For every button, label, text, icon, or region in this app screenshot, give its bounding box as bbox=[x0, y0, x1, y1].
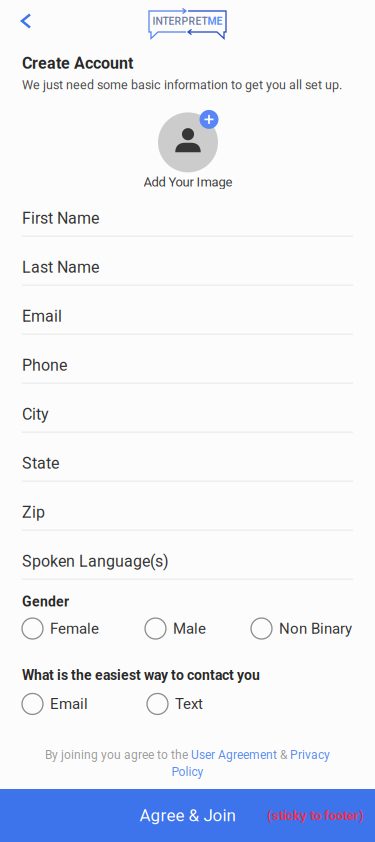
button[interactable]: Zip bbox=[22, 482, 353, 531]
button[interactable]: First Name bbox=[22, 188, 353, 237]
staticText: City bbox=[22, 405, 49, 424]
staticText: Create Account bbox=[22, 54, 133, 73]
staticText: Male bbox=[173, 620, 206, 637]
button[interactable]: Last Name bbox=[22, 237, 353, 286]
button[interactable]: Male bbox=[145, 618, 207, 639]
staticText: User Agreement bbox=[191, 748, 277, 762]
staticText: Zip bbox=[22, 503, 45, 522]
staticText: Last Name bbox=[22, 258, 99, 277]
button[interactable]: Female bbox=[22, 618, 100, 639]
staticText: State bbox=[22, 454, 59, 473]
staticText: Email bbox=[22, 307, 62, 326]
staticText: ME bbox=[207, 15, 222, 27]
staticText: Phone bbox=[22, 356, 67, 375]
staticText: Email bbox=[50, 695, 88, 713]
button[interactable]: Agree & Join bbox=[0, 789, 375, 842]
staticText: Add Your Image bbox=[143, 174, 232, 190]
button[interactable]: State bbox=[22, 433, 353, 482]
staticText: Text bbox=[175, 695, 203, 713]
button[interactable]: Spoken Language(s) bbox=[22, 531, 353, 580]
staticText: We just need some basic information to g… bbox=[22, 78, 342, 92]
staticText: What is the easiest way to contact you bbox=[22, 667, 260, 683]
staticText: Agree & Join bbox=[139, 805, 235, 825]
button[interactable]: Non Binary bbox=[251, 618, 353, 639]
staticText: Privacy bbox=[290, 748, 330, 762]
staticText: First Name bbox=[22, 209, 99, 228]
staticText: INTERPRET bbox=[152, 15, 207, 27]
staticText: Non Binary bbox=[279, 620, 352, 637]
button[interactable]: Add Your Image bbox=[143, 112, 232, 190]
button[interactable]: Policy bbox=[171, 765, 203, 779]
staticText: Spoken Language(s) bbox=[22, 552, 169, 571]
button[interactable]: Email bbox=[22, 286, 353, 335]
staticText: By joining you agree to the bbox=[45, 748, 191, 762]
staticText: & bbox=[277, 748, 290, 762]
button[interactable]: Back bbox=[0, 0, 44, 40]
button[interactable]: Phone bbox=[22, 335, 353, 384]
button[interactable]: Email bbox=[22, 693, 89, 714]
button[interactable]: City bbox=[22, 384, 353, 433]
staticText: (sticky to footer) bbox=[267, 808, 364, 823]
staticText: Female bbox=[50, 620, 99, 637]
staticText: Policy bbox=[171, 765, 203, 779]
button[interactable]: User Agreement bbox=[191, 748, 277, 762]
button[interactable]: Privacy bbox=[290, 748, 330, 762]
staticText: Gender bbox=[22, 594, 69, 610]
button[interactable]: Text bbox=[147, 693, 204, 714]
